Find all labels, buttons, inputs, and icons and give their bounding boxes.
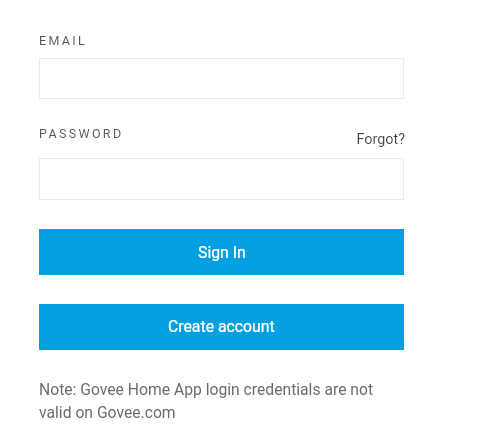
staticText: PASSWORD — [39, 126, 124, 141]
button[interactable]: Email address input field — [39, 58, 404, 99]
button[interactable]: Sign In — [39, 229, 404, 275]
button[interactable]: Create account — [39, 304, 404, 350]
staticText: EMAIL — [39, 33, 88, 48]
button[interactable]: Password input field — [39, 158, 404, 200]
staticText: valid on Govee.com — [39, 403, 176, 421]
staticText: Sign In — [198, 243, 246, 262]
staticText: Forgot? — [356, 131, 405, 148]
staticText: Note: Govee Home App login credentials a… — [39, 380, 374, 398]
staticText: Create account — [168, 317, 275, 336]
button[interactable]: Forgot? — [345, 131, 405, 151]
